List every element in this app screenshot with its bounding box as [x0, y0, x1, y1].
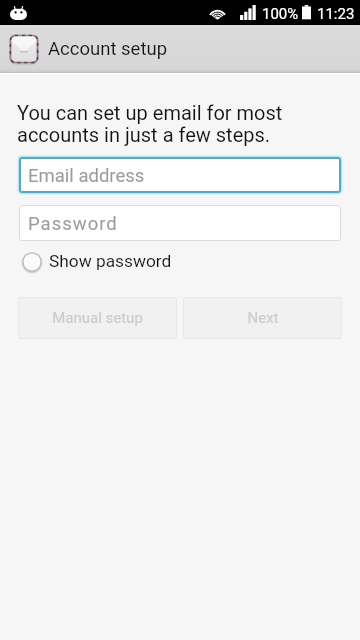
- staticText: Account setup: [48, 38, 168, 60]
- other: Email app icon: [8, 33, 40, 65]
- staticText: Next: [247, 309, 279, 327]
- staticText: accounts in just a few steps.: [17, 123, 271, 146]
- button[interactable]: Email address: [19, 157, 341, 193]
- button[interactable]: Manual setup: [18, 297, 177, 339]
- staticText: Email address: [28, 165, 145, 187]
- staticText: You can set up email for most: [17, 101, 283, 124]
- button[interactable]: Next: [183, 297, 342, 339]
- staticText: Manual setup: [52, 309, 143, 327]
- staticText: 11:23: [317, 5, 355, 23]
- staticText: 100%: [262, 5, 299, 23]
- staticText: Show password: [49, 251, 172, 271]
- button[interactable]: Password: [19, 205, 341, 241]
- button[interactable]: Email app icon: [0, 25, 360, 72]
- other: Notification: [10, 6, 27, 20]
- button[interactable]: Show password: [21, 251, 172, 273]
- staticText: Password: [28, 213, 118, 235]
